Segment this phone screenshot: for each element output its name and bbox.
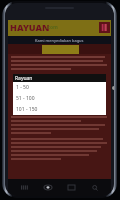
button[interactable]: Logo xyxy=(99,22,110,33)
staticText: Kami menyediakan bagus xyxy=(35,38,84,43)
button[interactable]: Search xyxy=(87,179,103,196)
button[interactable]: 1 - 50 xyxy=(13,82,106,93)
staticText: HAYUAN xyxy=(10,21,50,33)
button[interactable]: 51 - 100 xyxy=(13,93,106,104)
button[interactable]: 101 - 150 xyxy=(13,104,106,115)
staticText: 51 - 100 xyxy=(16,95,35,102)
staticText: 1 - 50 xyxy=(16,84,29,91)
staticText: .com xyxy=(46,24,58,31)
button[interactable]: Menu xyxy=(16,179,32,196)
button[interactable]: Home xyxy=(40,179,56,196)
button[interactable]: Back xyxy=(63,179,79,196)
staticText: Rayuan xyxy=(15,75,33,82)
staticText: 101 - 150 xyxy=(16,106,38,113)
